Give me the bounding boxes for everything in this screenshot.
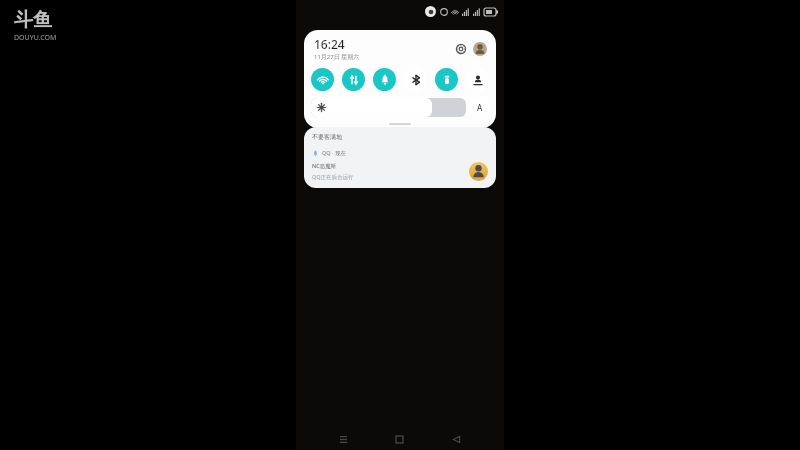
staticText: 16:24 — [314, 36, 345, 52]
button[interactable]: Recents — [334, 430, 352, 448]
button[interactable]: Home — [390, 430, 408, 448]
button[interactable]: Auto brightness — [470, 98, 489, 117]
staticText: 斗鱼 — [14, 8, 52, 32]
button[interactable]: User account — [473, 42, 487, 56]
staticText: DOUYU.COM — [14, 33, 57, 43]
staticText: 不要客满地 — [312, 133, 342, 141]
button[interactable]: Settings — [453, 41, 469, 57]
button[interactable]: Location — [466, 68, 489, 91]
button[interactable]: Bluetooth — [404, 68, 427, 91]
button[interactable]: 不要客满地 — [304, 127, 496, 188]
button[interactable]: Brightness — [311, 98, 466, 117]
button[interactable]: Flashlight — [435, 68, 458, 91]
staticText: 11月27日 星期六 — [314, 53, 360, 61]
staticText: QQ · 现在 — [322, 149, 346, 157]
staticText: QQ正在后台运行 — [312, 173, 354, 181]
staticText: NC恶魔斯 — [312, 162, 337, 170]
staticText: A — [477, 102, 483, 113]
button[interactable]: Back — [447, 430, 465, 448]
button[interactable]: Mobile data — [342, 68, 365, 91]
button[interactable]: Wi-Fi — [311, 68, 334, 91]
button[interactable]: Ringer — [373, 68, 396, 91]
